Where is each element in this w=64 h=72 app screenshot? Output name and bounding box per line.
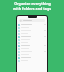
- button[interactable]: [17, 29, 47, 32]
- staticText: with folders and tags: [13, 6, 51, 11]
- button[interactable]: [17, 32, 47, 35]
- button[interactable]: [17, 47, 47, 50]
- button[interactable]: [17, 59, 47, 62]
- button[interactable]: [17, 38, 47, 41]
- button[interactable]: [17, 44, 47, 47]
- button[interactable]: [17, 41, 47, 44]
- button[interactable]: [17, 23, 47, 26]
- button[interactable]: [17, 50, 47, 53]
- button[interactable]: [17, 53, 47, 56]
- button[interactable]: [17, 56, 47, 59]
- button[interactable]: Search: [19, 19, 45, 22]
- button[interactable]: [17, 35, 47, 38]
- button[interactable]: [17, 26, 47, 29]
- staticText: Organize everything: [14, 1, 51, 6]
